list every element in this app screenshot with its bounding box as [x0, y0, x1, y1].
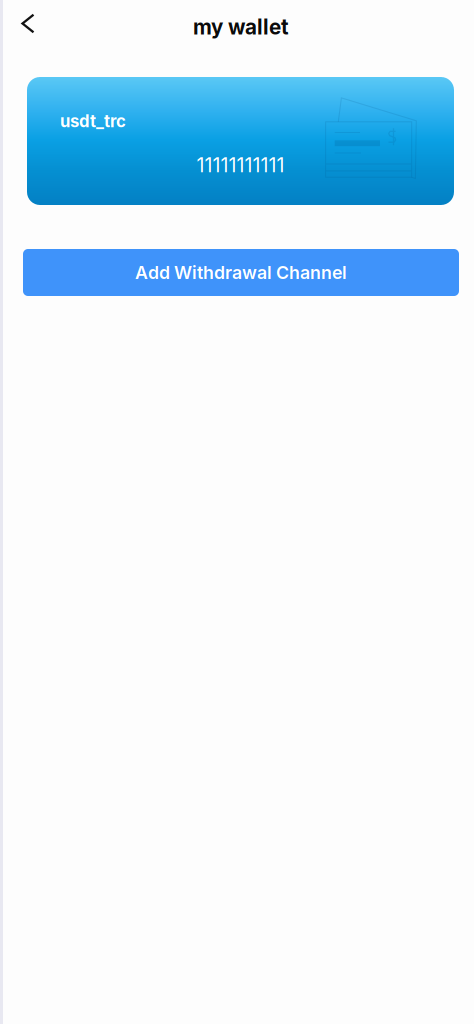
staticText: Add Withdrawal Channel: [135, 262, 347, 283]
staticText: my wallet: [193, 14, 289, 39]
button[interactable]: Back: [8, 3, 48, 43]
button[interactable]: Add Withdrawal Channel: [23, 249, 459, 296]
staticText: usdt_trc: [60, 111, 126, 131]
staticText: 11111111111: [196, 153, 284, 177]
